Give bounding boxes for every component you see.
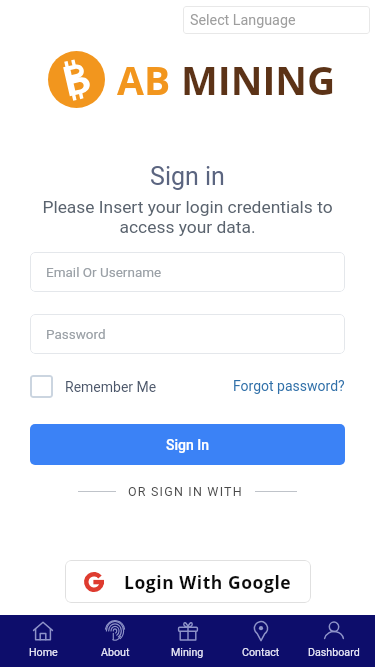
staticText: Please Insert your login credentials to … <box>0 197 375 237</box>
staticText: Contact <box>242 646 280 659</box>
button[interactable]: Select Language <box>183 6 370 34</box>
button[interactable]: Email Or Username <box>30 252 345 292</box>
button[interactable]: Forgot password? <box>233 378 345 394</box>
button[interactable]: Sign In <box>30 424 345 465</box>
button[interactable]: Dashboard <box>297 615 370 667</box>
staticText: Sign in <box>0 162 375 191</box>
staticText: About <box>101 646 130 659</box>
button[interactable]: About <box>79 615 151 667</box>
staticText: Home <box>29 646 58 659</box>
staticText: Login With Google <box>124 570 292 594</box>
staticText: AB <box>117 53 181 106</box>
button[interactable]: Home <box>7 615 79 667</box>
button[interactable]: Contact <box>224 615 297 667</box>
staticText: Password <box>46 326 106 342</box>
button[interactable]: Password <box>30 314 345 354</box>
staticText: Select Language <box>190 12 296 29</box>
button[interactable]: Remember Me <box>30 375 157 398</box>
staticText: MINING <box>181 53 336 106</box>
staticText: Forgot password? <box>233 378 345 394</box>
staticText: OR SIGN IN WITH <box>128 484 243 499</box>
staticText: Sign In <box>166 437 209 453</box>
button[interactable]: Login With Google <box>65 560 311 603</box>
staticText: Mining <box>171 646 204 659</box>
staticText: Remember Me <box>65 379 157 395</box>
button[interactable]: Mining <box>151 615 224 667</box>
staticText: Dashboard <box>308 646 360 659</box>
staticText: Email Or Username <box>46 264 162 280</box>
